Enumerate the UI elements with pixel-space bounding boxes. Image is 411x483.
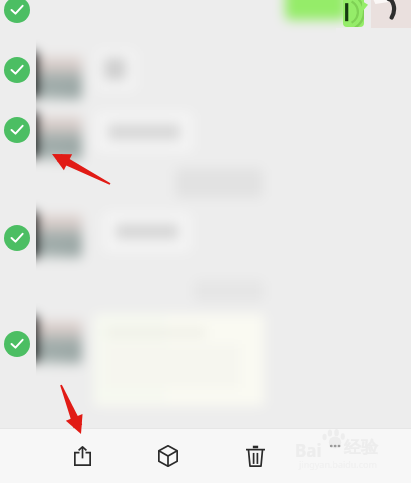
button[interactable]: Selected — [4, 117, 30, 143]
button[interactable]: Add to Favorites — [143, 432, 193, 480]
button[interactable]: Selected — [4, 331, 30, 357]
button[interactable]: Selected — [4, 225, 30, 251]
button[interactable]: Delete — [230, 432, 280, 480]
staticText: Bai — [295, 439, 322, 462]
button[interactable]: Selected — [4, 57, 30, 83]
button[interactable]: Share — [57, 432, 107, 480]
button[interactable]: Selected — [4, 0, 30, 23]
staticText: 经验 — [344, 437, 378, 458]
